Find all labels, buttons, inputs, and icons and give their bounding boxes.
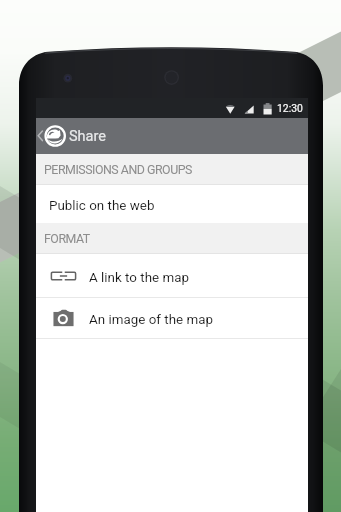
button[interactable]: An image of the map (36, 298, 308, 338)
staticText: 12:30 (277, 102, 303, 114)
staticText: A link to the map (89, 270, 190, 286)
staticText: An image of the map (89, 312, 214, 328)
staticText: Public on the web (49, 198, 155, 214)
staticText: PERMISSIONS AND GROUPS (44, 162, 192, 177)
staticText: Share (69, 128, 106, 145)
button[interactable]: Navigate up (36, 118, 308, 154)
button[interactable]: A link to the map (36, 254, 308, 297)
button[interactable]: Public on the web (36, 185, 308, 223)
staticText: FORMAT (44, 231, 90, 246)
